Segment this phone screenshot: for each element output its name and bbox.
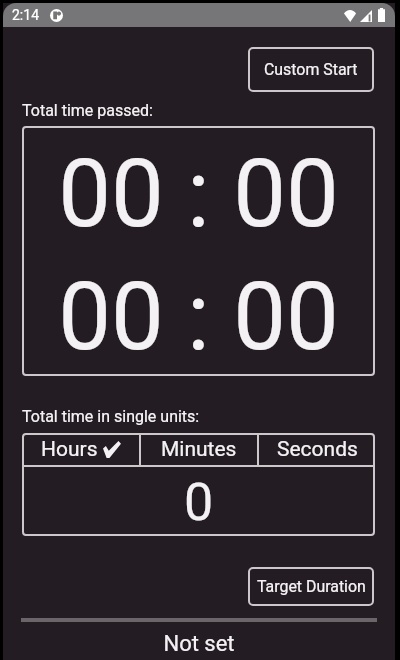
staticText: 00 : 00 (22, 139, 375, 249)
staticText: Minutes (161, 437, 237, 462)
staticText: Hours (41, 437, 98, 462)
staticText: Seconds (277, 437, 358, 462)
staticText: Total time in single units: (22, 407, 200, 426)
staticText: 2:14 (12, 7, 39, 23)
staticText: 0 (22, 472, 375, 533)
staticText: Custom Start (264, 60, 358, 79)
button[interactable]: Hours (22, 433, 139, 465)
button[interactable]: Seconds (259, 433, 375, 465)
staticText: Total time passed: (22, 101, 153, 120)
staticText: 00 : 00 (22, 262, 375, 372)
other: Hours selected (103, 441, 121, 458)
button[interactable]: Custom Start (248, 47, 374, 92)
staticText: Not set (3, 631, 395, 657)
staticText: Target Duration (257, 577, 366, 596)
button[interactable]: Target Duration (248, 567, 374, 606)
button[interactable]: Minutes (141, 433, 257, 465)
